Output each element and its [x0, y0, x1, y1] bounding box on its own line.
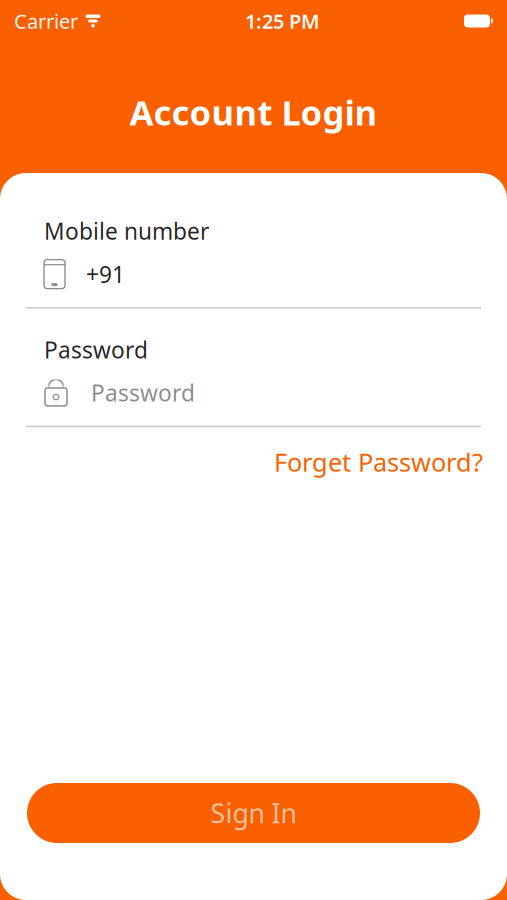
staticText: Sign In: [210, 795, 296, 831]
staticText: Password: [91, 378, 195, 408]
staticText: Mobile number: [44, 216, 209, 246]
staticText: +91: [86, 259, 125, 289]
staticText: 1:25 PM: [245, 8, 320, 34]
staticText: Account Login: [129, 89, 377, 135]
staticText: Password: [44, 335, 148, 365]
button[interactable]: Forget Password?: [274, 440, 483, 484]
button[interactable]: Sign In: [27, 783, 480, 843]
staticText: Forget Password?: [274, 445, 483, 479]
staticText: Carrier: [14, 8, 78, 34]
